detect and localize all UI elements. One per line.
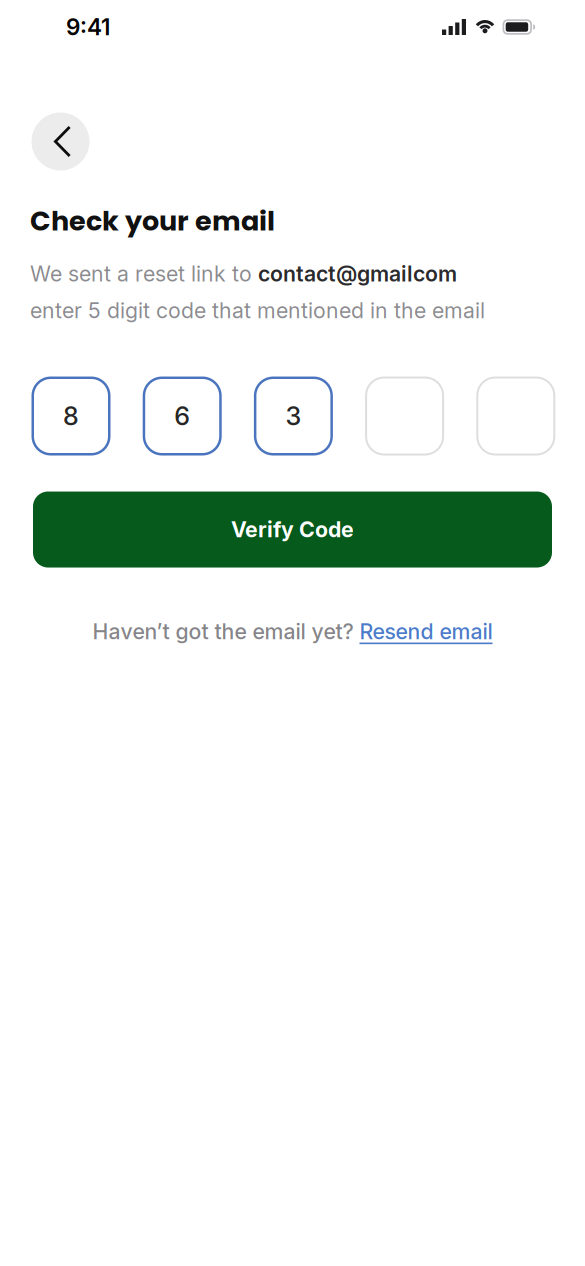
staticText: 8 [63, 401, 79, 431]
staticText: enter 5 digit code that mentioned in the… [30, 298, 485, 323]
button[interactable]: Code digit 8 [31, 376, 110, 455]
button[interactable]: Empty code digit [365, 376, 444, 455]
staticText: 9:41 [66, 13, 110, 41]
staticText: Haven’t got the email yet? [92, 618, 359, 644]
button[interactable]: Empty code digit [476, 376, 555, 455]
staticText: 3 [285, 401, 301, 431]
staticText: contact@gmailcom [258, 261, 457, 287]
button[interactable]: Code digit 3 [254, 376, 333, 455]
button[interactable]: Resend email [359, 618, 492, 644]
button[interactable]: Verify Code [33, 491, 552, 567]
staticText: Check your email [30, 202, 275, 240]
staticText: 6 [174, 401, 190, 431]
staticText: Verify Code [231, 517, 354, 542]
staticText: Resend email [359, 618, 492, 644]
button[interactable]: Back [32, 113, 89, 170]
button[interactable]: Code digit 6 [143, 376, 222, 455]
staticText: We sent a reset link to [30, 261, 258, 287]
